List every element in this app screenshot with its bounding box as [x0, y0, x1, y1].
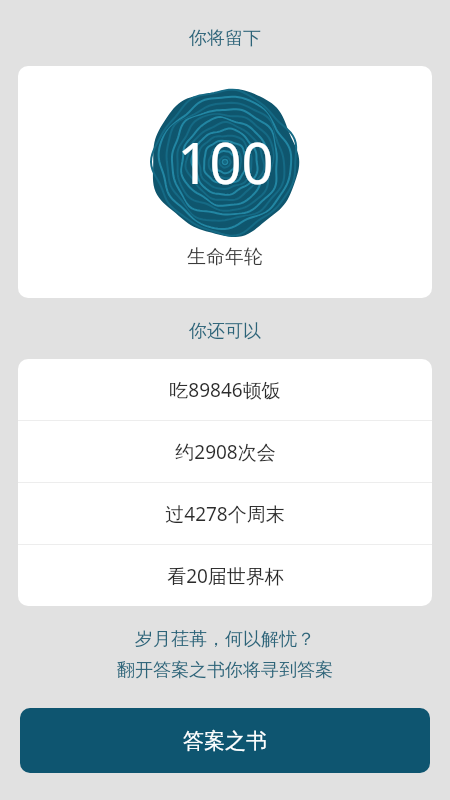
staticText: 你还可以	[189, 320, 261, 343]
staticText: 你将留下	[189, 27, 261, 50]
button[interactable]: 答案之书	[20, 708, 430, 773]
button[interactable]: 吃89846顿饭	[18, 359, 432, 420]
button[interactable]: 约2908次会	[18, 421, 432, 482]
other: 生命年轮	[152, 89, 298, 235]
staticText: 约2908次会	[175, 439, 276, 465]
button[interactable]: 生命年轮	[18, 66, 432, 298]
staticText: 生命年轮	[187, 245, 263, 269]
staticText: 岁月荏苒，何以解忧？	[135, 628, 315, 651]
staticText: 过4278个周末	[165, 501, 285, 527]
staticText: 看20届世界杯	[167, 563, 284, 589]
staticText: 答案之书	[183, 728, 267, 754]
staticText: 100	[177, 124, 274, 200]
button[interactable]: 看20届世界杯	[18, 545, 432, 606]
staticText: 吃89846顿饭	[169, 377, 281, 403]
button[interactable]: 过4278个周末	[18, 483, 432, 544]
staticText: 翻开答案之书你将寻到答案	[117, 659, 333, 682]
